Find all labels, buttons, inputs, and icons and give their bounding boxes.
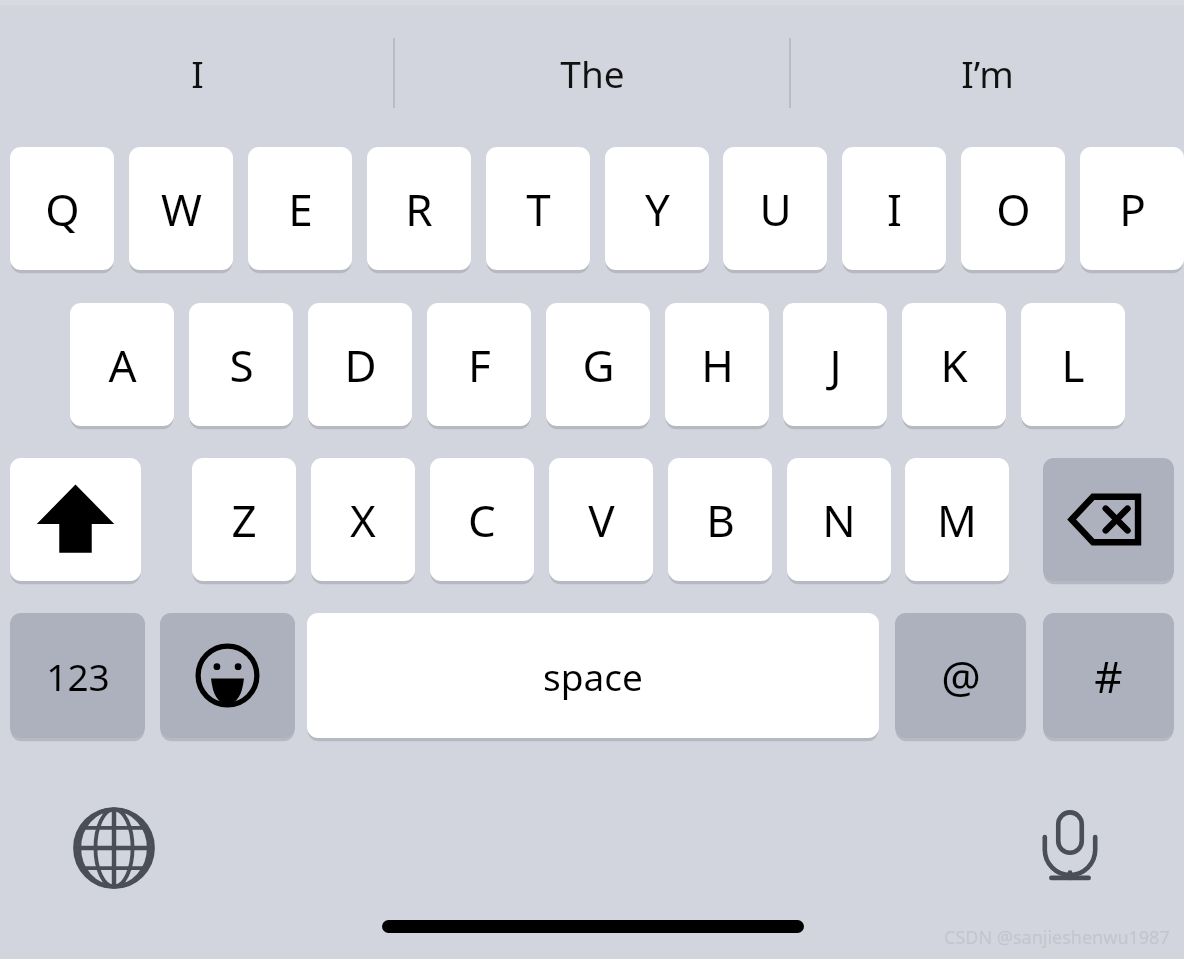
staticText: X [350, 490, 376, 550]
button[interactable]: K [902, 303, 1006, 426]
staticText: The [560, 48, 625, 98]
button[interactable]: L [1021, 303, 1125, 426]
staticText: E [288, 179, 313, 239]
staticText: Y [645, 179, 670, 239]
staticText: D [344, 335, 377, 395]
staticText: G [582, 335, 615, 395]
staticText: P [1119, 179, 1146, 239]
button[interactable]: Dictate [1028, 804, 1112, 888]
button[interactable]: D [308, 303, 412, 426]
button[interactable]: B [668, 458, 772, 581]
button[interactable]: A [70, 303, 174, 426]
staticText: L [1061, 335, 1085, 395]
button[interactable]: J [783, 303, 887, 426]
staticText: I’m [961, 48, 1014, 98]
button[interactable]: # [1043, 613, 1174, 738]
button[interactable]: F [427, 303, 531, 426]
staticText: O [996, 179, 1031, 239]
staticText: M [937, 490, 977, 550]
staticText: I [191, 48, 204, 98]
staticText: C [468, 490, 496, 550]
staticText: J [829, 335, 842, 395]
button[interactable]: V [549, 458, 653, 581]
button[interactable]: M [905, 458, 1009, 581]
button[interactable]: S [189, 303, 293, 426]
button[interactable]: I’m [790, 36, 1184, 110]
button[interactable]: E [248, 147, 352, 270]
button[interactable]: Emoji [160, 613, 295, 738]
staticText: I [887, 179, 902, 239]
button[interactable]: The [394, 36, 790, 110]
button[interactable]: W [129, 147, 233, 270]
button[interactable]: Backspace [1043, 458, 1174, 581]
button[interactable]: Q [10, 147, 114, 270]
button[interactable]: O [961, 147, 1065, 270]
staticText: K [940, 335, 968, 395]
staticText: 123 [46, 651, 110, 701]
staticText: R [405, 179, 433, 239]
button[interactable]: H [665, 303, 769, 426]
staticText: T [526, 179, 551, 239]
button[interactable]: Change keyboard language [72, 806, 156, 890]
button[interactable]: P [1080, 147, 1184, 270]
staticText: W [161, 179, 202, 239]
staticText: A [108, 335, 137, 395]
staticText: Q [45, 179, 80, 239]
staticText: @ [941, 646, 981, 706]
button[interactable]: N [787, 458, 891, 581]
staticText: V [588, 490, 615, 550]
button[interactable]: G [546, 303, 650, 426]
button[interactable]: T [486, 147, 590, 270]
button[interactable]: I [842, 147, 946, 270]
button[interactable]: Y [605, 147, 709, 270]
button[interactable]: U [723, 147, 827, 270]
staticText: # [1094, 646, 1123, 706]
staticText: CSDN @sanjieshenwu1987 [944, 925, 1170, 950]
button[interactable]: X [311, 458, 415, 581]
button[interactable]: @ [895, 613, 1026, 738]
staticText: F [468, 335, 491, 395]
button[interactable]: space [307, 613, 879, 738]
staticText: Z [231, 490, 257, 550]
staticText: B [706, 490, 735, 550]
staticText: H [701, 335, 734, 395]
button[interactable]: I [0, 36, 394, 110]
staticText: U [759, 179, 792, 239]
staticText: N [822, 490, 856, 550]
staticText: S [229, 335, 254, 395]
staticText: space [543, 651, 643, 701]
button[interactable]: R [367, 147, 471, 270]
button[interactable]: Shift [10, 458, 141, 581]
button[interactable]: C [430, 458, 534, 581]
button[interactable]: 123 [10, 613, 145, 738]
button[interactable]: Z [192, 458, 296, 581]
